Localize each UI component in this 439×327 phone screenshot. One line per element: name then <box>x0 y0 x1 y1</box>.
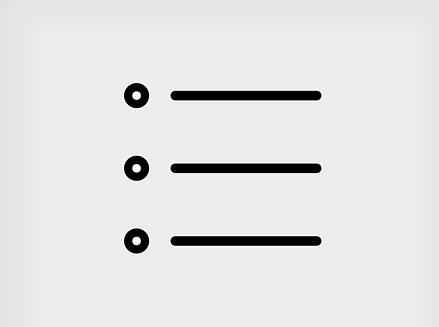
button[interactable]: List item <box>124 83 321 108</box>
button[interactable]: List item <box>124 228 321 254</box>
button[interactable]: List item <box>124 156 321 181</box>
